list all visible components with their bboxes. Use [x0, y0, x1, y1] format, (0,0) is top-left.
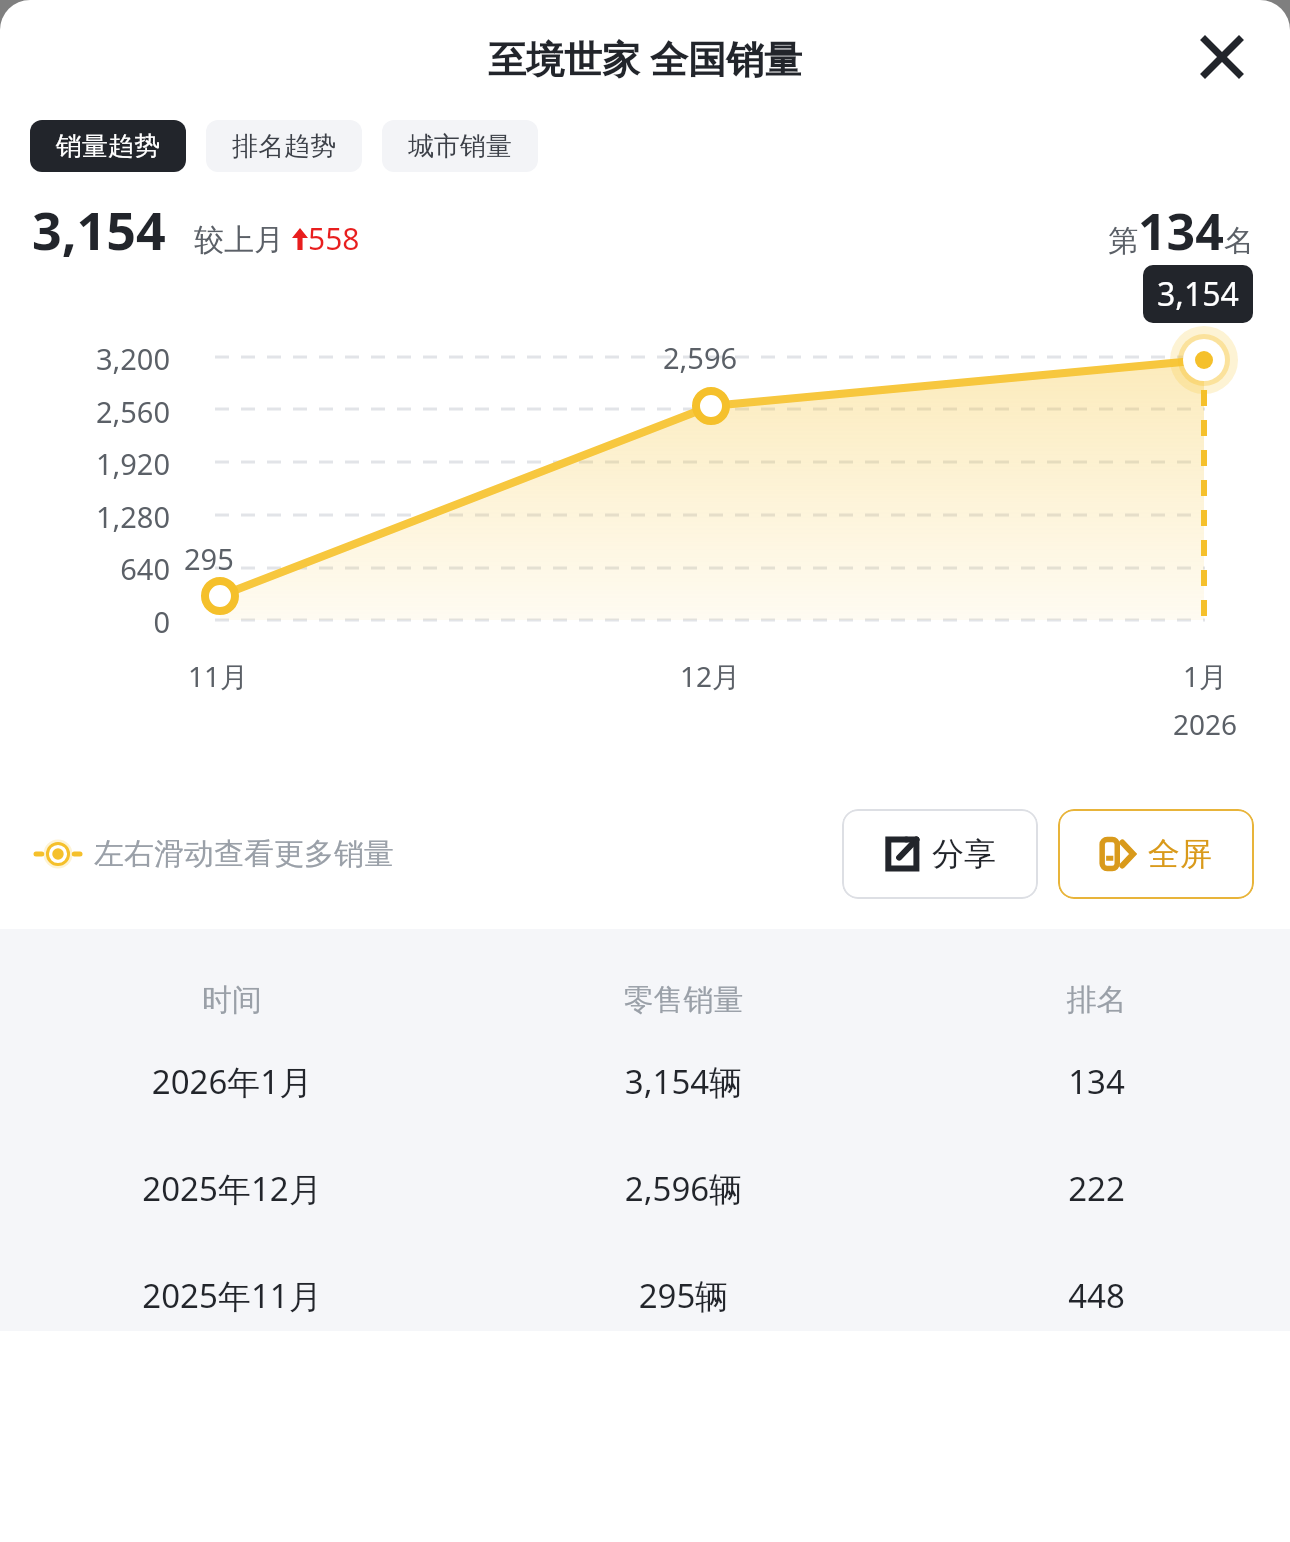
staticText: 2026 — [1173, 705, 1238, 743]
button[interactable]: 分享 — [842, 809, 1038, 899]
staticText: 全屏 — [1148, 834, 1212, 874]
staticText: 0 — [60, 602, 170, 641]
button[interactable]: 全屏 — [1058, 809, 1254, 899]
staticText: 640 — [60, 549, 170, 588]
staticText: 12月 — [660, 657, 760, 695]
staticText: 至境世家 全国销量 — [488, 32, 802, 84]
staticText: 558 — [308, 218, 360, 259]
staticText: 名 — [1224, 222, 1254, 260]
button[interactable]: Close — [1194, 29, 1250, 85]
staticText: 3,200 — [60, 339, 170, 378]
staticText: 左右滑动查看更多销量 — [94, 835, 394, 873]
staticText: 1月 — [1183, 657, 1228, 695]
staticText: 1,280 — [60, 497, 170, 536]
staticText: 3,154 — [1157, 272, 1239, 316]
staticText: 2,596辆 — [464, 1166, 903, 1211]
staticText: 2,560 — [60, 392, 170, 431]
staticText: 11月 — [168, 657, 268, 695]
staticText: 较上月 — [194, 218, 292, 259]
staticText: 排名趋势 — [232, 130, 336, 163]
staticText: 1,920 — [60, 444, 170, 483]
staticText: 零售销量 — [464, 981, 903, 1019]
staticText: 3,154辆 — [464, 1059, 903, 1104]
staticText: 分享 — [932, 834, 996, 874]
staticText: 城市销量 — [408, 130, 512, 163]
staticText: 2,596 — [663, 338, 738, 377]
staticText: 2026年1月 — [0, 1059, 464, 1104]
staticText: 时间 — [0, 981, 464, 1019]
staticText: 134 — [1138, 197, 1224, 265]
staticText: 销量趋势 — [56, 130, 160, 163]
staticText: 134 — [903, 1059, 1290, 1104]
staticText: 448 — [903, 1273, 1290, 1318]
staticText: 第 — [1108, 222, 1138, 260]
staticText: 2025年11月 — [0, 1273, 464, 1318]
staticText: 222 — [903, 1166, 1290, 1211]
staticText: 2025年12月 — [0, 1166, 464, 1211]
staticText: 295 — [184, 539, 234, 578]
staticText: 排名 — [903, 981, 1290, 1019]
button[interactable]: 排名趋势 — [206, 120, 362, 172]
button[interactable]: 销量趋势 — [30, 120, 186, 172]
staticText: 3,154 — [32, 194, 166, 265]
button[interactable]: 城市销量 — [382, 120, 538, 172]
staticText: 295辆 — [464, 1273, 903, 1318]
